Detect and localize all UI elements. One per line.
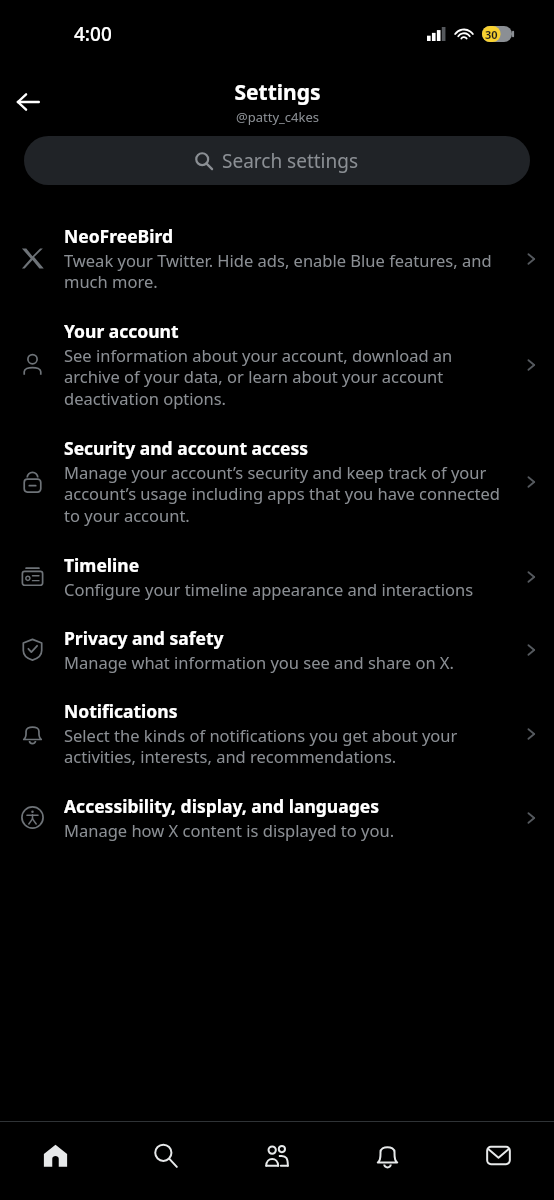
staticText: Timeline (64, 553, 140, 577)
button[interactable]: Your account (0, 306, 554, 423)
button[interactable]: Communities (221, 1122, 332, 1200)
staticText: @patty_c4kes (236, 108, 319, 126)
staticText: Manage your account’s security and keep … (64, 461, 500, 527)
button[interactable]: Privacy and safety (0, 613, 554, 686)
button[interactable]: NeoFreeBird (0, 211, 554, 306)
staticText: NeoFreeBird (64, 224, 173, 248)
staticText: Manage how X content is displayed to you… (64, 819, 395, 841)
button[interactable]: Timeline (0, 540, 554, 613)
staticText: Privacy and safety (64, 626, 224, 650)
button[interactable]: Messages (443, 1122, 554, 1200)
staticText: Your account (64, 319, 179, 343)
staticText: 30 (485, 27, 498, 42)
staticText: Tweak your Twitter. Hide ads, enable Blu… (64, 249, 500, 293)
button[interactable]: Back (8, 82, 48, 122)
staticText: 4:00 (74, 21, 112, 47)
button[interactable]: Home (0, 1122, 110, 1200)
button[interactable]: Notifications (0, 686, 554, 781)
staticText: See information about your account, down… (64, 344, 500, 410)
staticText: Select the kinds of notifications you ge… (64, 724, 500, 768)
staticText: Security and account access (64, 436, 309, 460)
staticText: Configure your timeline appearance and i… (64, 578, 474, 600)
staticText: Notifications (64, 699, 178, 723)
button[interactable]: Security and account access (0, 423, 554, 540)
staticText: Manage what information you see and shar… (64, 651, 454, 673)
staticText: Search settings (222, 148, 359, 174)
staticText: Accessibility, display, and languages (64, 794, 379, 818)
staticText: Settings (234, 78, 321, 107)
button[interactable]: Accessibility, display, and languages (0, 781, 554, 854)
button[interactable]: Search settings (24, 136, 530, 185)
button[interactable]: Search (110, 1122, 221, 1200)
button[interactable]: Notifications (332, 1122, 443, 1200)
